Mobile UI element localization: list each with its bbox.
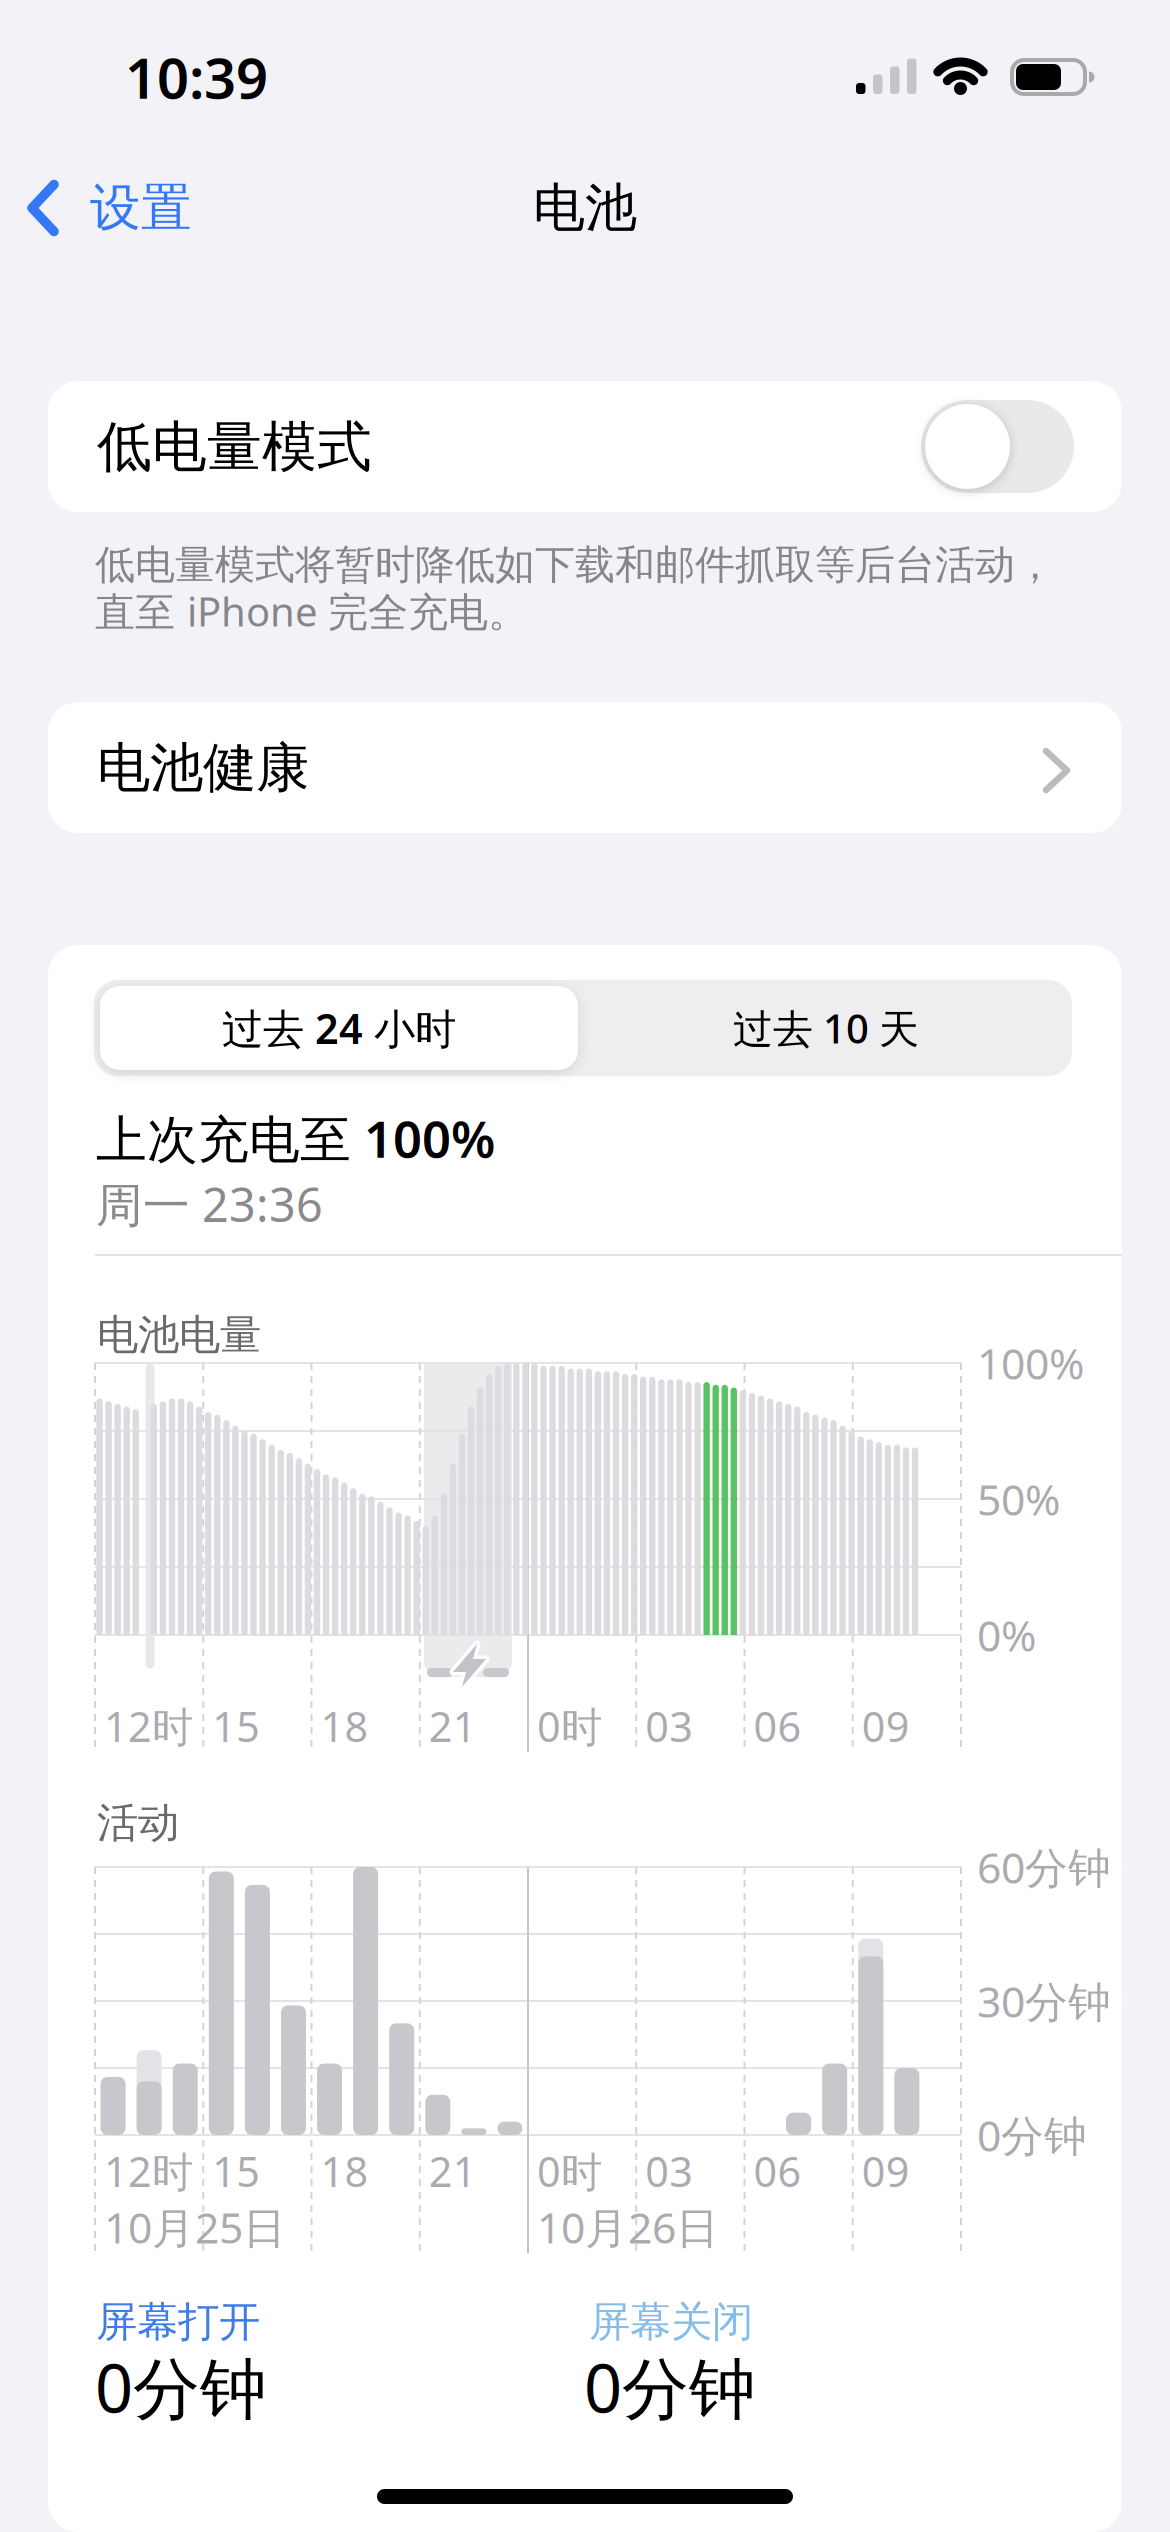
staticText: 0分钟 [584,2343,756,2431]
staticText: 0分钟 [95,2343,267,2431]
staticText: 09 [862,1699,910,1753]
staticText: 60分钟 [977,1839,1111,1895]
staticText: 过去 24 小时 [222,1001,456,1055]
staticText: 03 [645,1699,693,1753]
staticText: 09 [862,2144,910,2198]
staticText: 06 [753,2144,801,2198]
staticText: 电池电量 [97,1310,261,1360]
staticText: 15 [212,2144,260,2198]
staticText: 低电量模式将暂时降低如下载和邮件抓取等后台活动， [95,540,1055,589]
staticText: 设置 [90,177,192,239]
staticText: 10月26日 [537,2199,719,2255]
staticText: 0分钟 [977,2107,1087,2163]
button[interactable]: 低电量模式 [921,400,1074,493]
staticText: 12时 [104,2144,193,2198]
button[interactable]: 过去 10 天 [586,983,1066,1073]
staticText: 过去 10 天 [733,1001,919,1054]
button[interactable]: 电池健康 [48,702,1122,833]
staticText: 15 [212,1699,260,1753]
staticText: 21 [429,1699,477,1753]
staticText: 10月25日 [104,2199,286,2255]
button[interactable]: 过去 24 小时 [100,986,578,1070]
staticText: 活动 [97,1798,179,1848]
staticText: 50% [977,1471,1060,1527]
staticText: 0时 [537,2144,602,2198]
button[interactable]: 返回设置 [26,177,192,239]
staticText: 21 [429,2144,477,2198]
staticText: 低电量模式 [97,413,372,480]
staticText: 上次充电至 100% [96,1104,495,1172]
staticText: 06 [753,1699,801,1753]
staticText: 18 [320,2144,368,2198]
staticText: 03 [645,2144,693,2198]
staticText: 18 [320,1699,368,1753]
staticText: 10:39 [125,40,268,114]
staticText: 电池 [533,176,637,240]
staticText: 周一 23:36 [96,1173,323,1235]
staticText: 100% [977,1335,1084,1391]
staticText: 屏幕关闭 [589,2297,753,2347]
staticText: 屏幕打开 [96,2297,260,2347]
staticText: 12时 [104,1699,193,1753]
staticText: 直至 iPhone 完全充电。 [95,584,528,637]
staticText: 0% [977,1607,1036,1663]
staticText: 30分钟 [977,1973,1111,2029]
staticText: 电池健康 [97,735,309,801]
staticText: 0时 [537,1699,602,1753]
